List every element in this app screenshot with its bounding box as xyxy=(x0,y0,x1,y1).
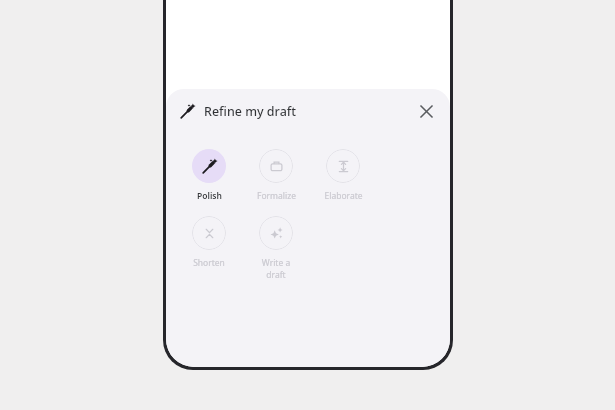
button[interactable]: Elaborate xyxy=(322,149,364,202)
staticText: Polish xyxy=(197,190,222,202)
button[interactable]: Close xyxy=(412,97,440,125)
staticText: Refine my draft xyxy=(204,103,297,120)
staticText: Formalize xyxy=(257,190,296,202)
staticText: Write a draft xyxy=(255,257,297,281)
button[interactable]: Shorten xyxy=(188,216,230,269)
button[interactable]: Polish xyxy=(188,149,230,202)
button[interactable]: Formalize xyxy=(255,149,297,202)
staticText: Shorten xyxy=(193,257,225,269)
button[interactable]: Write a draft xyxy=(255,216,297,281)
staticText: Elaborate xyxy=(324,190,363,202)
